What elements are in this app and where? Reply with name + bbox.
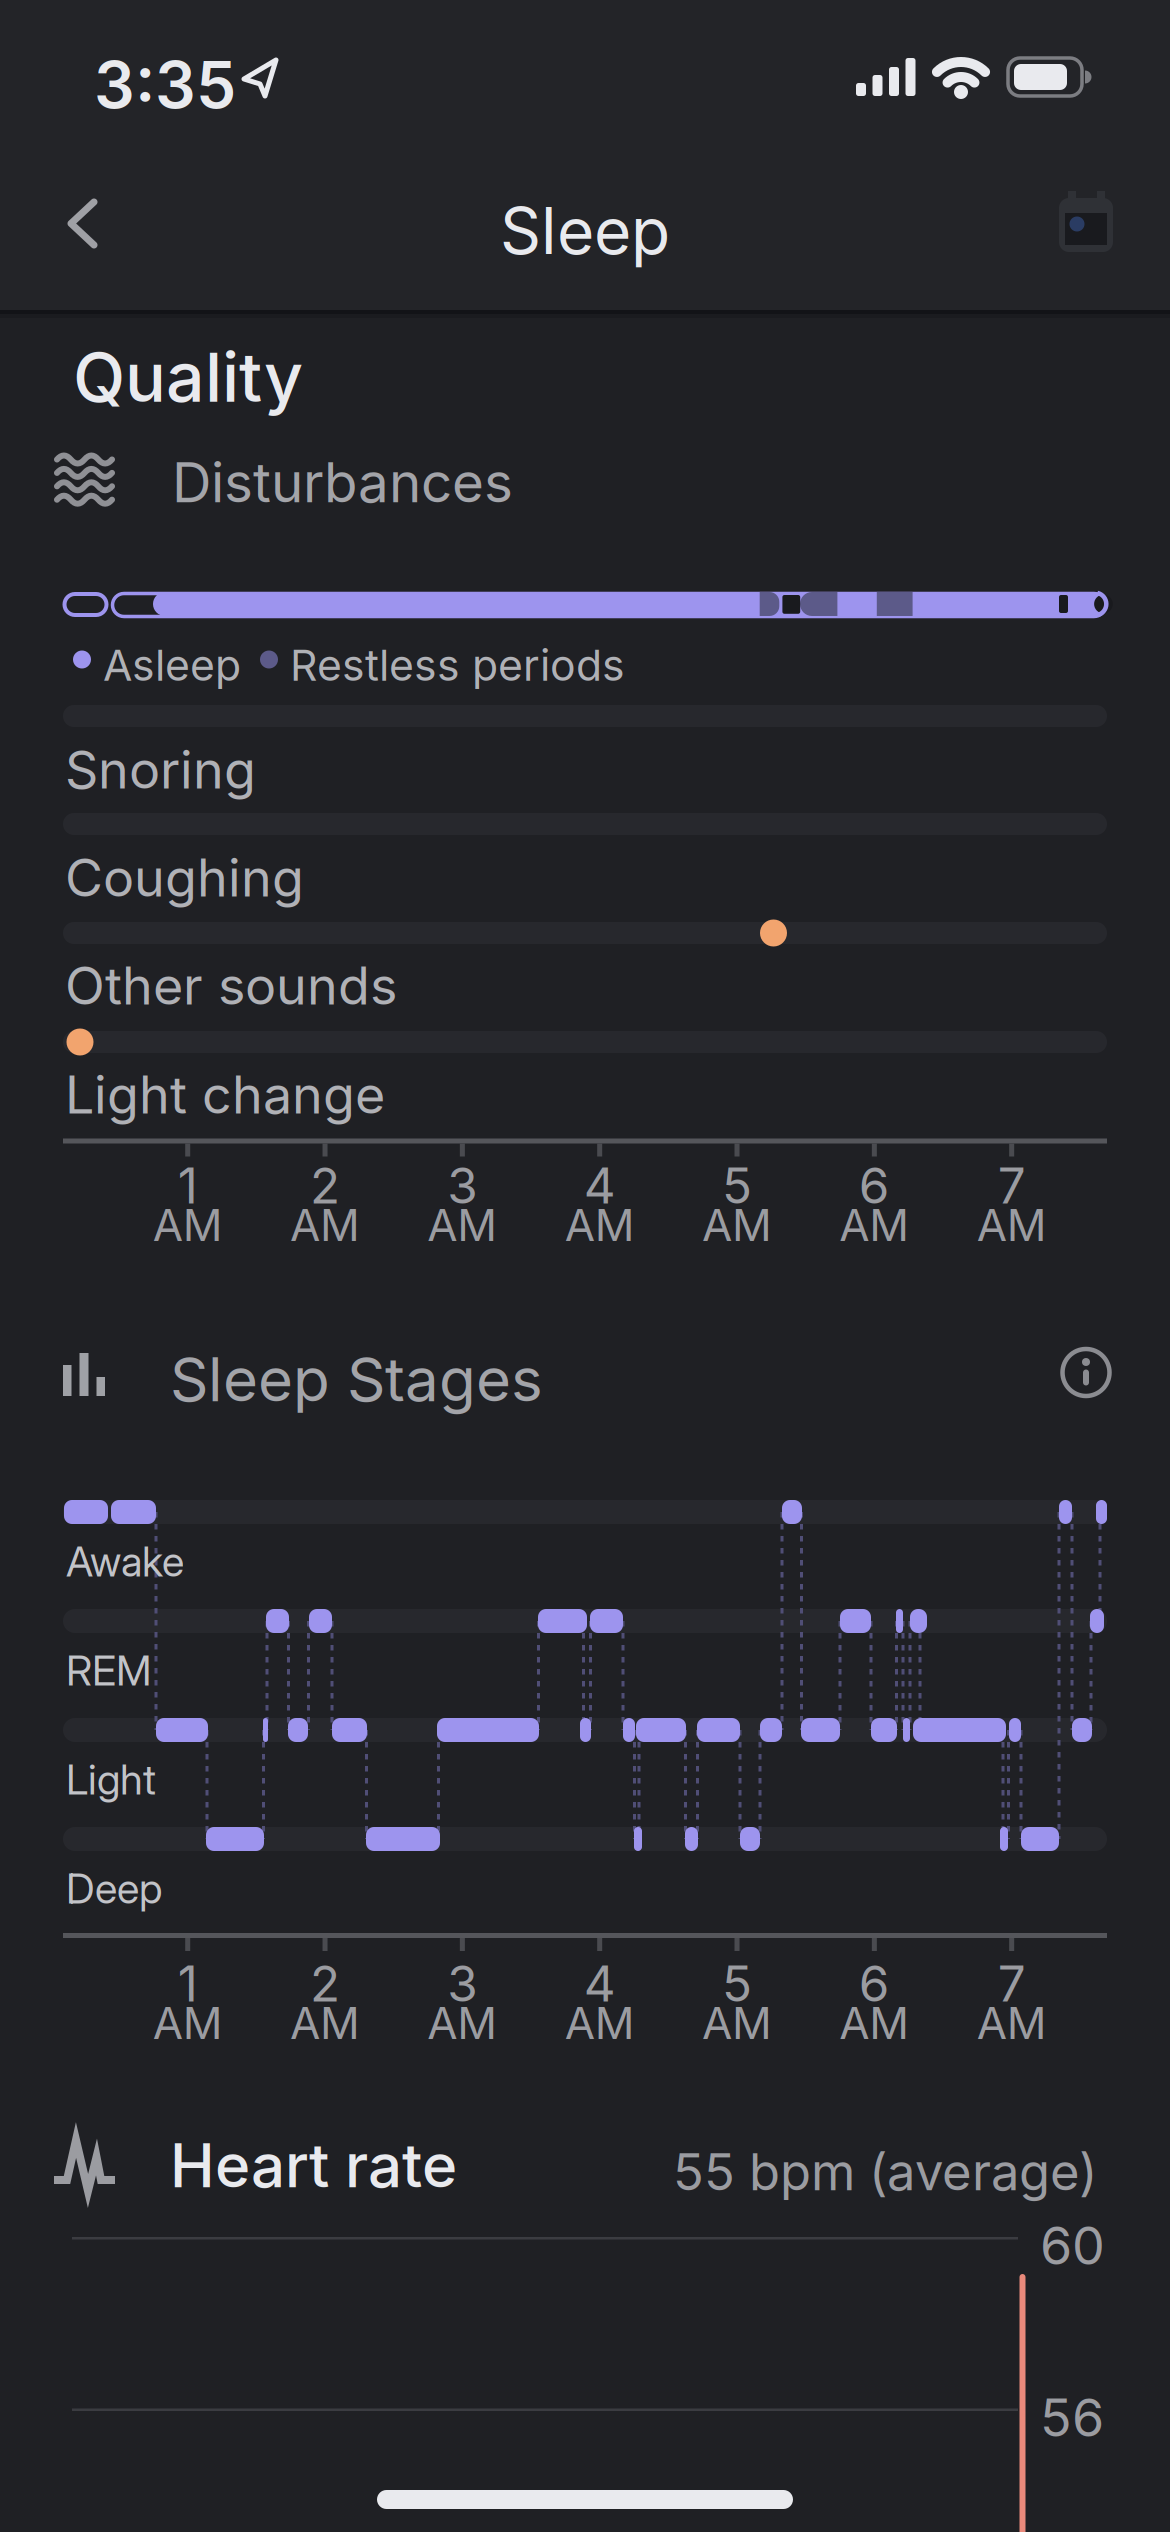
staticText: 4 (584, 1156, 616, 1215)
staticText: AM (427, 1199, 497, 1251)
staticText: Disturbances (172, 450, 513, 514)
staticText: 55 bpm (average) (673, 2142, 1097, 2202)
staticText: AM (565, 1199, 635, 1251)
staticText: AM (153, 1997, 223, 2049)
staticText: AM (977, 1199, 1047, 1251)
staticText: AM (153, 1199, 223, 1251)
button[interactable]: Back (68, 199, 98, 249)
staticText: 2 (310, 1156, 340, 1215)
staticText: Snoring (65, 739, 256, 800)
button[interactable]: About sleep stages (1060, 1346, 1112, 1398)
staticText: Light change (65, 1064, 385, 1125)
staticText: 2 (310, 1954, 340, 2013)
staticText: 56 (1040, 2387, 1104, 2448)
staticText: 6 (859, 1954, 890, 2013)
staticText: 3 (447, 1954, 477, 2013)
staticText: 3:35 (94, 47, 236, 122)
staticText: 7 (998, 1954, 1026, 2013)
staticText: AM (977, 1997, 1047, 2049)
staticText: AM (839, 1199, 909, 1251)
staticText: Asleep (103, 640, 241, 690)
staticText: Other sounds (65, 955, 397, 1016)
staticText: 1 (178, 1156, 198, 1215)
staticText: 7 (998, 1156, 1026, 1215)
staticText: AM (702, 1199, 772, 1251)
staticText: AM (702, 1997, 772, 2049)
staticText: Quality (73, 337, 303, 417)
staticText: 1 (178, 1954, 198, 2013)
staticText: 5 (722, 1156, 752, 1215)
staticText: Awake (66, 1537, 184, 1586)
staticText: 5 (722, 1954, 752, 2013)
staticText: 3 (447, 1156, 477, 1215)
staticText: 4 (584, 1954, 616, 2013)
staticText: REM (66, 1646, 152, 1695)
staticText: Sleep (500, 193, 670, 268)
staticText: Heart rate (170, 2130, 457, 2201)
staticText: 60 (1040, 2215, 1105, 2276)
staticText: Coughing (65, 847, 304, 908)
button[interactable]: Calendar (1057, 191, 1115, 253)
staticText: Light (66, 1755, 156, 1804)
staticText: AM (290, 1199, 360, 1251)
staticText: Sleep Stages (170, 1344, 543, 1415)
staticText: AM (565, 1997, 635, 2049)
staticText: AM (290, 1997, 360, 2049)
staticText: Restless periods (290, 640, 625, 690)
staticText: AM (427, 1997, 497, 2049)
staticText: Deep (66, 1864, 162, 1913)
staticText: 6 (859, 1156, 890, 1215)
staticText: AM (839, 1997, 909, 2049)
